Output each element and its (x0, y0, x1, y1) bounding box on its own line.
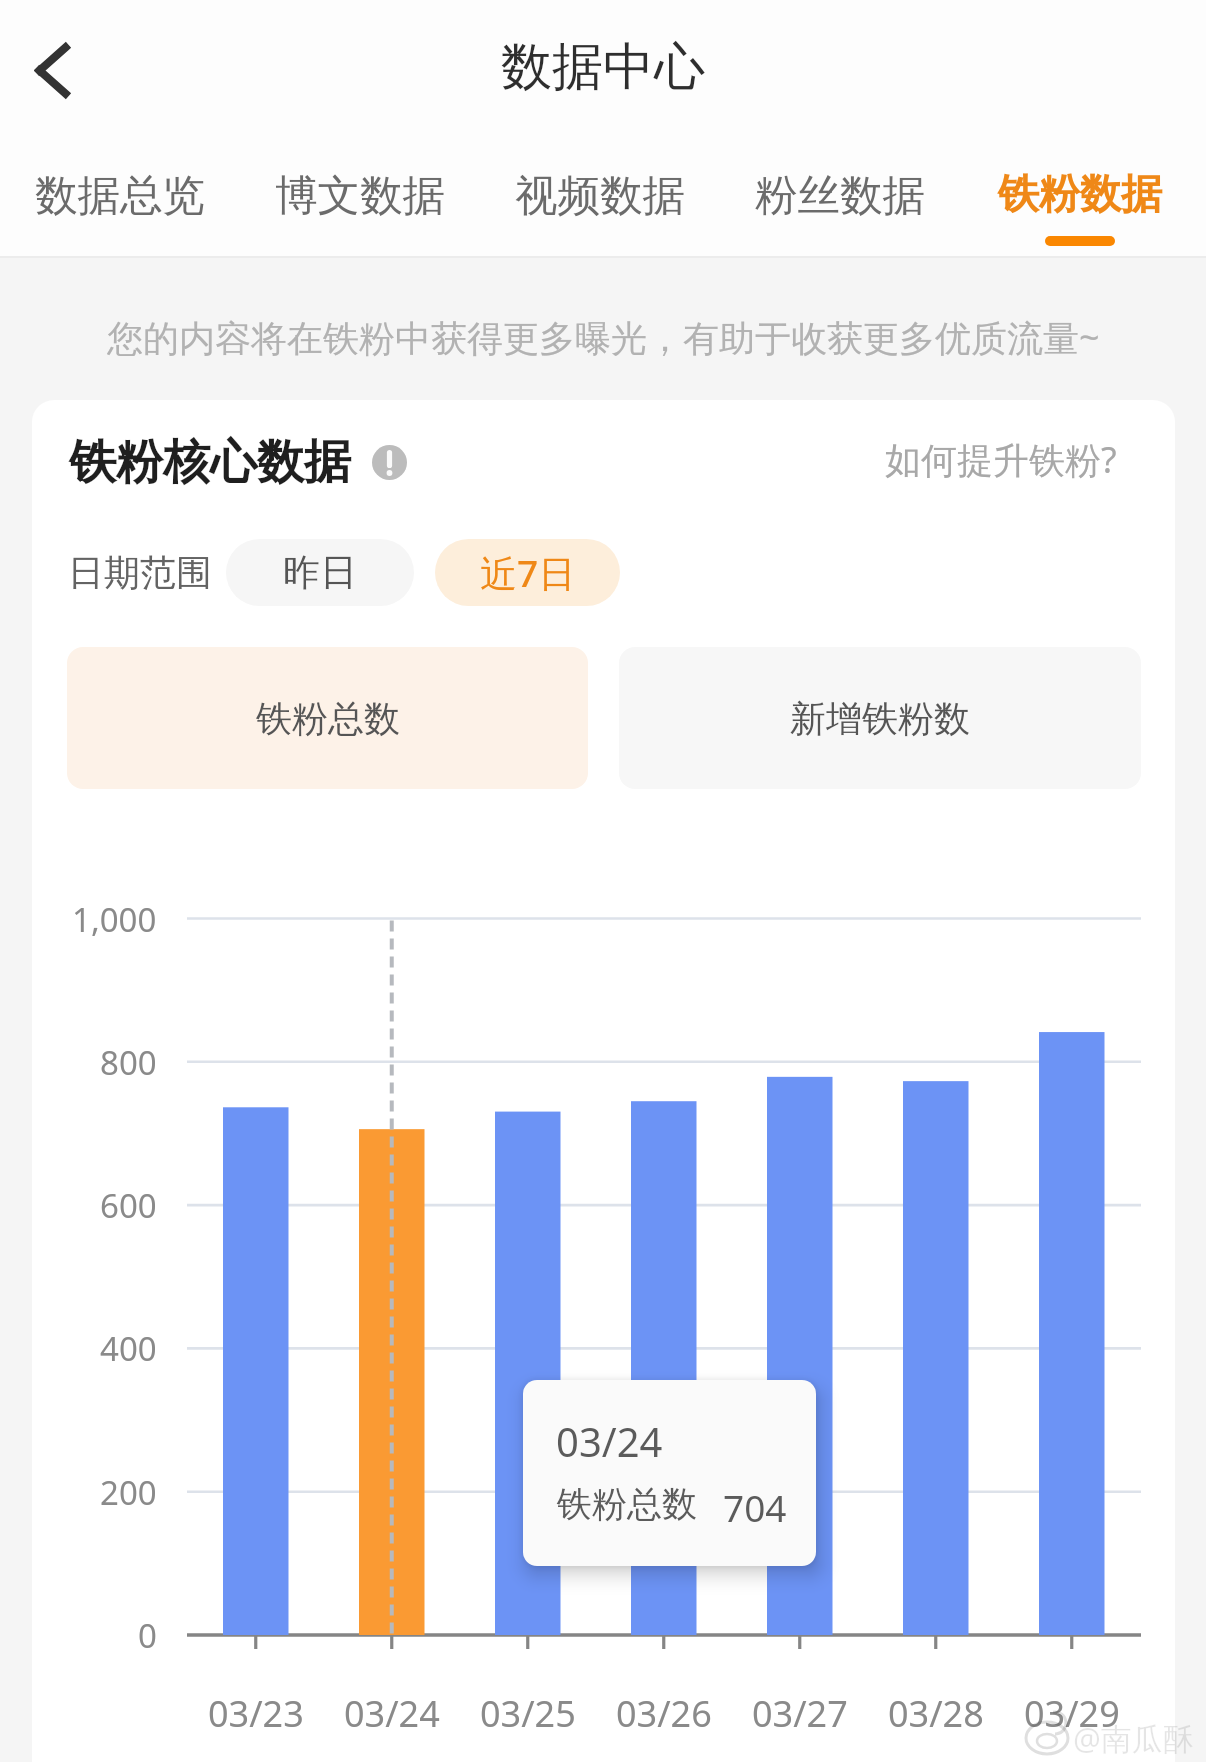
staticText: 03/29 (1024, 1689, 1120, 1738)
staticText: 400 (100, 1326, 157, 1371)
button[interactable]: 粉丝数据 (730, 140, 950, 256)
staticText: 03/25 (480, 1689, 576, 1738)
staticText: 日期范围 (68, 550, 212, 595)
staticText: 600 (100, 1183, 157, 1228)
staticText: 博文数据 (275, 169, 445, 223)
staticText: 铁粉总数 (256, 696, 400, 741)
button[interactable]: 铁粉数据 (970, 140, 1190, 256)
button[interactable]: 近7日 (435, 539, 620, 606)
button[interactable]: 视频数据 (490, 140, 710, 256)
staticText: 新增铁粉数 (790, 696, 970, 741)
staticText: 0 (138, 1613, 157, 1658)
staticText: 704 (723, 1482, 787, 1532)
button[interactable]: 博文数据 (250, 140, 470, 256)
staticText: 03/24 (556, 1414, 663, 1468)
button[interactable]: 铁粉总数 (67, 647, 588, 789)
staticText: 1,000 (72, 897, 157, 942)
staticText: 您的内容将在铁粉中获得更多曝光，有助于收获更多优质流量~ (107, 313, 1100, 362)
staticText: @南瓜酥 (1073, 1717, 1194, 1759)
staticText: 近7日 (480, 547, 576, 598)
staticText: 03/26 (616, 1689, 712, 1738)
button[interactable]: Info (372, 445, 407, 480)
staticText: 铁粉数据 (998, 169, 1162, 221)
staticText: 03/23 (208, 1689, 304, 1738)
staticText: 800 (100, 1040, 157, 1085)
button[interactable]: Back (16, 34, 89, 107)
staticText: 粉丝数据 (755, 169, 925, 223)
staticText: 数据总览 (35, 169, 205, 223)
button[interactable]: 如何提升铁粉? (856, 434, 1117, 484)
staticText: 如何提升铁粉? (885, 435, 1117, 484)
staticText: 200 (100, 1470, 157, 1515)
staticText: 03/24 (344, 1689, 440, 1738)
staticText: 03/28 (888, 1689, 984, 1738)
staticText: 铁粉总数 (557, 1482, 697, 1526)
staticText: 昨日 (283, 549, 357, 596)
button[interactable]: 新增铁粉数 (619, 647, 1141, 789)
staticText: 铁粉核心数据 (69, 433, 351, 492)
staticText: 视频数据 (515, 169, 685, 223)
staticText: 03/27 (752, 1689, 848, 1738)
button[interactable]: 昨日 (226, 539, 414, 606)
staticText: 数据中心 (501, 35, 705, 99)
button[interactable]: 数据总览 (10, 140, 230, 256)
